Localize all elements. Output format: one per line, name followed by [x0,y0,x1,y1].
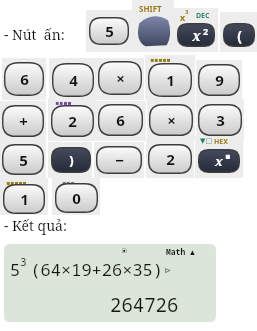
button[interactable]: ) [50,146,92,174]
button[interactable]: 3 [197,103,243,137]
staticText: x [215,152,223,170]
staticText: HEX [214,137,228,147]
staticText: ( [237,26,242,45]
button[interactable]: x [176,22,216,48]
button[interactable]: SHIFT [134,13,172,47]
button[interactable]: x [197,148,241,174]
staticText: ▼□ [200,137,212,145]
button[interactable]: × [148,103,194,137]
staticText: 5 [19,150,28,170]
button[interactable]: 5 [1,143,45,176]
button[interactable]: × [97,60,143,96]
button[interactable]: 6 [97,103,144,137]
staticText: 5 [105,21,114,41]
staticText: 6 [20,69,29,89]
staticText: SHIFT [139,3,162,14]
staticText: Math ▲ [166,246,195,257]
button[interactable]: 2 [147,143,193,175]
staticText: x [192,26,201,45]
staticText: 1 [166,70,175,90]
button[interactable]: 2 [50,104,95,138]
staticText: ▪▪▪▪▪ [6,179,27,186]
button[interactable]: 1 [147,62,193,98]
staticText: ▪▪▪ [62,179,75,186]
staticText: 1 [20,189,29,209]
button[interactable]: 4 [51,62,95,98]
button[interactable]: 9 [197,63,241,97]
button[interactable]: − [95,145,143,175]
button[interactable]: 1 [2,183,46,215]
staticText: × [116,68,125,88]
staticText: 3 [185,8,189,16]
staticText: × [167,110,176,130]
staticText: 4 [69,70,78,90]
staticText: 2 [166,149,175,169]
staticText: 264726 [110,292,179,318]
staticText: 9 [215,70,224,90]
staticText: ▪ [225,152,231,161]
staticText: + [19,111,28,131]
staticText: 2 [68,111,77,131]
staticText: 3 [216,110,225,130]
staticText: 0 [72,188,81,208]
staticText: - Kết quả: [4,216,67,235]
button[interactable]: 5 [88,16,130,46]
button[interactable]: 6 [3,61,45,97]
staticText: x [180,11,186,23]
staticText: - Nút ấn: [4,25,65,44]
staticText: 2 [203,25,209,37]
staticText: ▪▪▪▪▪ [150,56,171,63]
staticText: DEC [196,11,210,21]
button[interactable]: + [1,104,45,138]
button[interactable]: 0 [54,182,99,214]
button[interactable]: ( [222,22,256,48]
staticText: − [115,150,124,170]
staticText: 5 (64×19+26×35)▹ [10,258,174,281]
staticText: ) [69,151,74,169]
staticText: 6 [116,110,125,130]
staticText: ▪▪▪▪ [55,99,72,106]
staticText: ▣ [120,246,129,256]
staticText: 3 [20,254,27,269]
